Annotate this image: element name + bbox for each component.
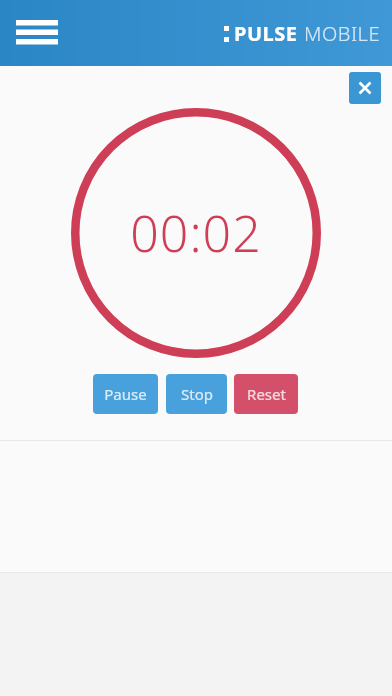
button[interactable]: Stop [166,374,227,414]
button[interactable]: Reset [234,374,298,414]
staticText: 00:02 [130,199,262,267]
staticText: Pause [104,384,147,404]
button[interactable]: Pause [93,374,158,414]
staticText: Stop [181,384,213,404]
button[interactable]: PULSE [224,20,380,47]
staticText: PULSE [234,20,298,47]
staticText: Reset [247,384,286,404]
staticText: MOBILE [304,20,380,47]
button[interactable]: Open navigation menu [10,13,64,53]
button[interactable]: Close [349,72,381,104]
